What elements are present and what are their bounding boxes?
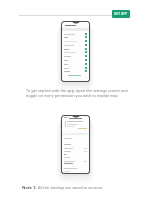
button[interactable]: [62, 147, 89, 150]
staticText: Note 1:: [22, 185, 38, 190]
staticText: GET APP: [114, 12, 128, 16]
button[interactable]: [62, 150, 89, 153]
staticText: To get started with the app, open the se…: [26, 88, 130, 98]
button[interactable]: [62, 156, 89, 159]
button[interactable]: [62, 35, 89, 39]
button[interactable]: [62, 167, 89, 170]
button[interactable]: [62, 170, 89, 173]
button[interactable]: [62, 50, 89, 54]
button[interactable]: [62, 66, 89, 70]
button[interactable]: [62, 54, 89, 58]
button[interactable]: [62, 58, 89, 62]
button[interactable]: [62, 39, 89, 43]
button[interactable]: [62, 160, 89, 163]
button[interactable]: Download now: [112, 10, 130, 18]
button[interactable]: [63, 120, 89, 130]
button[interactable]: Save settings: [68, 75, 81, 76]
button[interactable]: [62, 47, 89, 51]
button[interactable]: [62, 69, 89, 73]
button[interactable]: [62, 43, 89, 47]
button[interactable]: [62, 32, 89, 36]
staticText: All the settings are saved to account.: [38, 185, 104, 190]
button[interactable]: [62, 137, 89, 140]
button[interactable]: [62, 62, 89, 66]
button[interactable]: [62, 143, 89, 146]
